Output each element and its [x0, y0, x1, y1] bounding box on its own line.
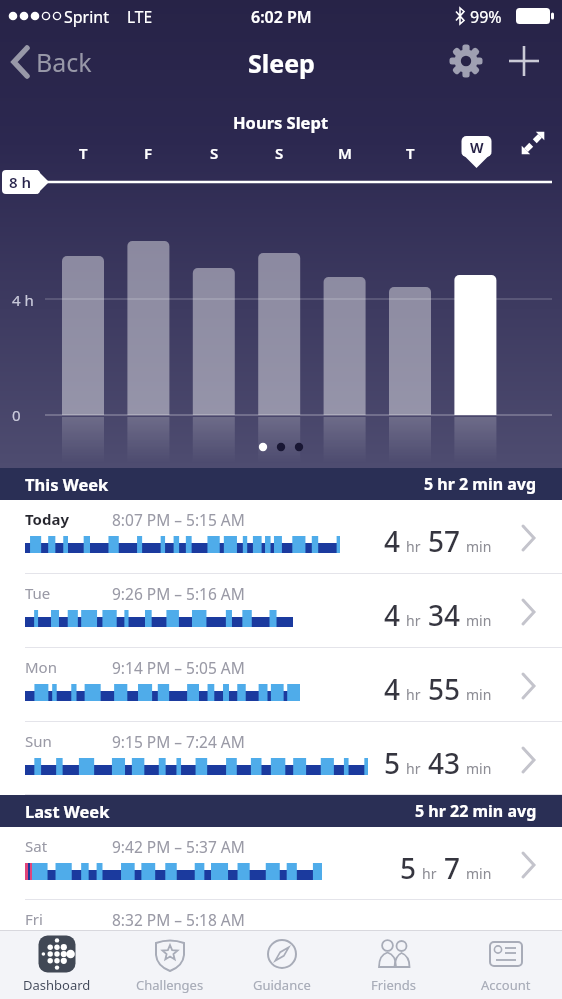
- button[interactable]: S: [194, 140, 234, 166]
- staticText: Today: [25, 509, 70, 529]
- button[interactable]: Challenges: [113, 930, 226, 999]
- button[interactable]: Mon: [0, 648, 562, 722]
- staticText: hr: [422, 864, 437, 883]
- staticText: 6:02 PM: [251, 6, 312, 28]
- staticText: Challenges: [136, 976, 204, 994]
- button[interactable]: M: [325, 140, 365, 166]
- staticText: hr: [406, 759, 421, 778]
- button[interactable]: T: [390, 140, 430, 166]
- button[interactable]: [505, 125, 555, 165]
- staticText: min: [466, 611, 492, 630]
- button[interactable]: Back: [8, 42, 118, 82]
- staticText: T: [79, 143, 88, 163]
- staticText: 0: [12, 405, 21, 425]
- staticText: Fri: [25, 909, 43, 929]
- staticText: Hours Slept: [233, 111, 329, 133]
- staticText: T: [406, 143, 415, 163]
- staticText: 55: [428, 670, 461, 708]
- staticText: This Week: [25, 473, 109, 495]
- staticText: Sprint: [64, 6, 110, 28]
- button[interactable]: Sun: [0, 722, 562, 795]
- staticText: W: [470, 138, 484, 156]
- button[interactable]: Fri: [0, 900, 562, 974]
- button[interactable]: Guidance: [226, 930, 338, 999]
- staticText: 4: [384, 522, 401, 560]
- staticText: S: [210, 143, 219, 163]
- staticText: 9:14 PM – 5:05 AM: [112, 657, 245, 678]
- button[interactable]: [455, 140, 495, 166]
- staticText: min: [466, 759, 492, 778]
- staticText: 99%: [470, 6, 502, 28]
- staticText: 5: [384, 744, 401, 782]
- staticText: LTE: [127, 6, 153, 27]
- staticText: hr: [406, 685, 421, 704]
- staticText: 4 h: [12, 290, 34, 310]
- staticText: Guidance: [253, 976, 311, 994]
- staticText: 5 hr 22 min avg: [415, 800, 537, 822]
- button[interactable]: Sat: [0, 827, 562, 900]
- staticText: 9:15 PM – 7:24 AM: [112, 731, 245, 752]
- staticText: S: [275, 143, 284, 163]
- button[interactable]: Friends: [338, 930, 450, 999]
- staticText: min: [466, 864, 492, 883]
- staticText: hr: [406, 611, 421, 630]
- staticText: min: [466, 685, 492, 704]
- staticText: 43: [428, 744, 461, 782]
- staticText: 9:42 PM – 5:37 AM: [112, 836, 245, 857]
- button[interactable]: [502, 40, 546, 82]
- staticText: M: [338, 143, 352, 163]
- staticText: F: [144, 143, 153, 163]
- staticText: 8 h: [9, 172, 32, 192]
- button[interactable]: [444, 40, 488, 82]
- staticText: Sun: [25, 731, 52, 751]
- button[interactable]: F: [128, 140, 168, 166]
- button[interactable]: S: [259, 140, 299, 166]
- staticText: hr: [406, 537, 421, 556]
- button[interactable]: Tue: [0, 574, 562, 648]
- staticText: 34: [428, 596, 461, 634]
- staticText: Last Week: [25, 800, 110, 822]
- staticText: 4: [384, 670, 401, 708]
- staticText: 5: [400, 849, 417, 887]
- staticText: 5 hr 2 min avg: [424, 473, 537, 495]
- staticText: Sleep: [248, 46, 315, 80]
- staticText: Tue: [25, 583, 51, 603]
- staticText: min: [466, 537, 492, 556]
- staticText: 8:07 PM – 5:15 AM: [112, 509, 245, 530]
- button[interactable]: Account: [450, 930, 562, 999]
- staticText: 7: [444, 849, 461, 887]
- staticText: Mon: [25, 657, 57, 677]
- staticText: Back: [36, 45, 92, 79]
- staticText: Friends: [371, 976, 417, 994]
- staticText: Account: [481, 976, 531, 994]
- button[interactable]: Today: [0, 500, 562, 574]
- staticText: 9:26 PM – 5:16 AM: [112, 583, 245, 604]
- button[interactable]: Dashboard: [0, 930, 113, 999]
- staticText: 57: [428, 522, 461, 560]
- staticText: Sat: [25, 836, 48, 856]
- staticText: Dashboard: [23, 976, 91, 994]
- staticText: 8:32 PM – 5:18 AM: [112, 909, 245, 930]
- staticText: 4: [384, 596, 401, 634]
- button[interactable]: T: [63, 140, 103, 166]
